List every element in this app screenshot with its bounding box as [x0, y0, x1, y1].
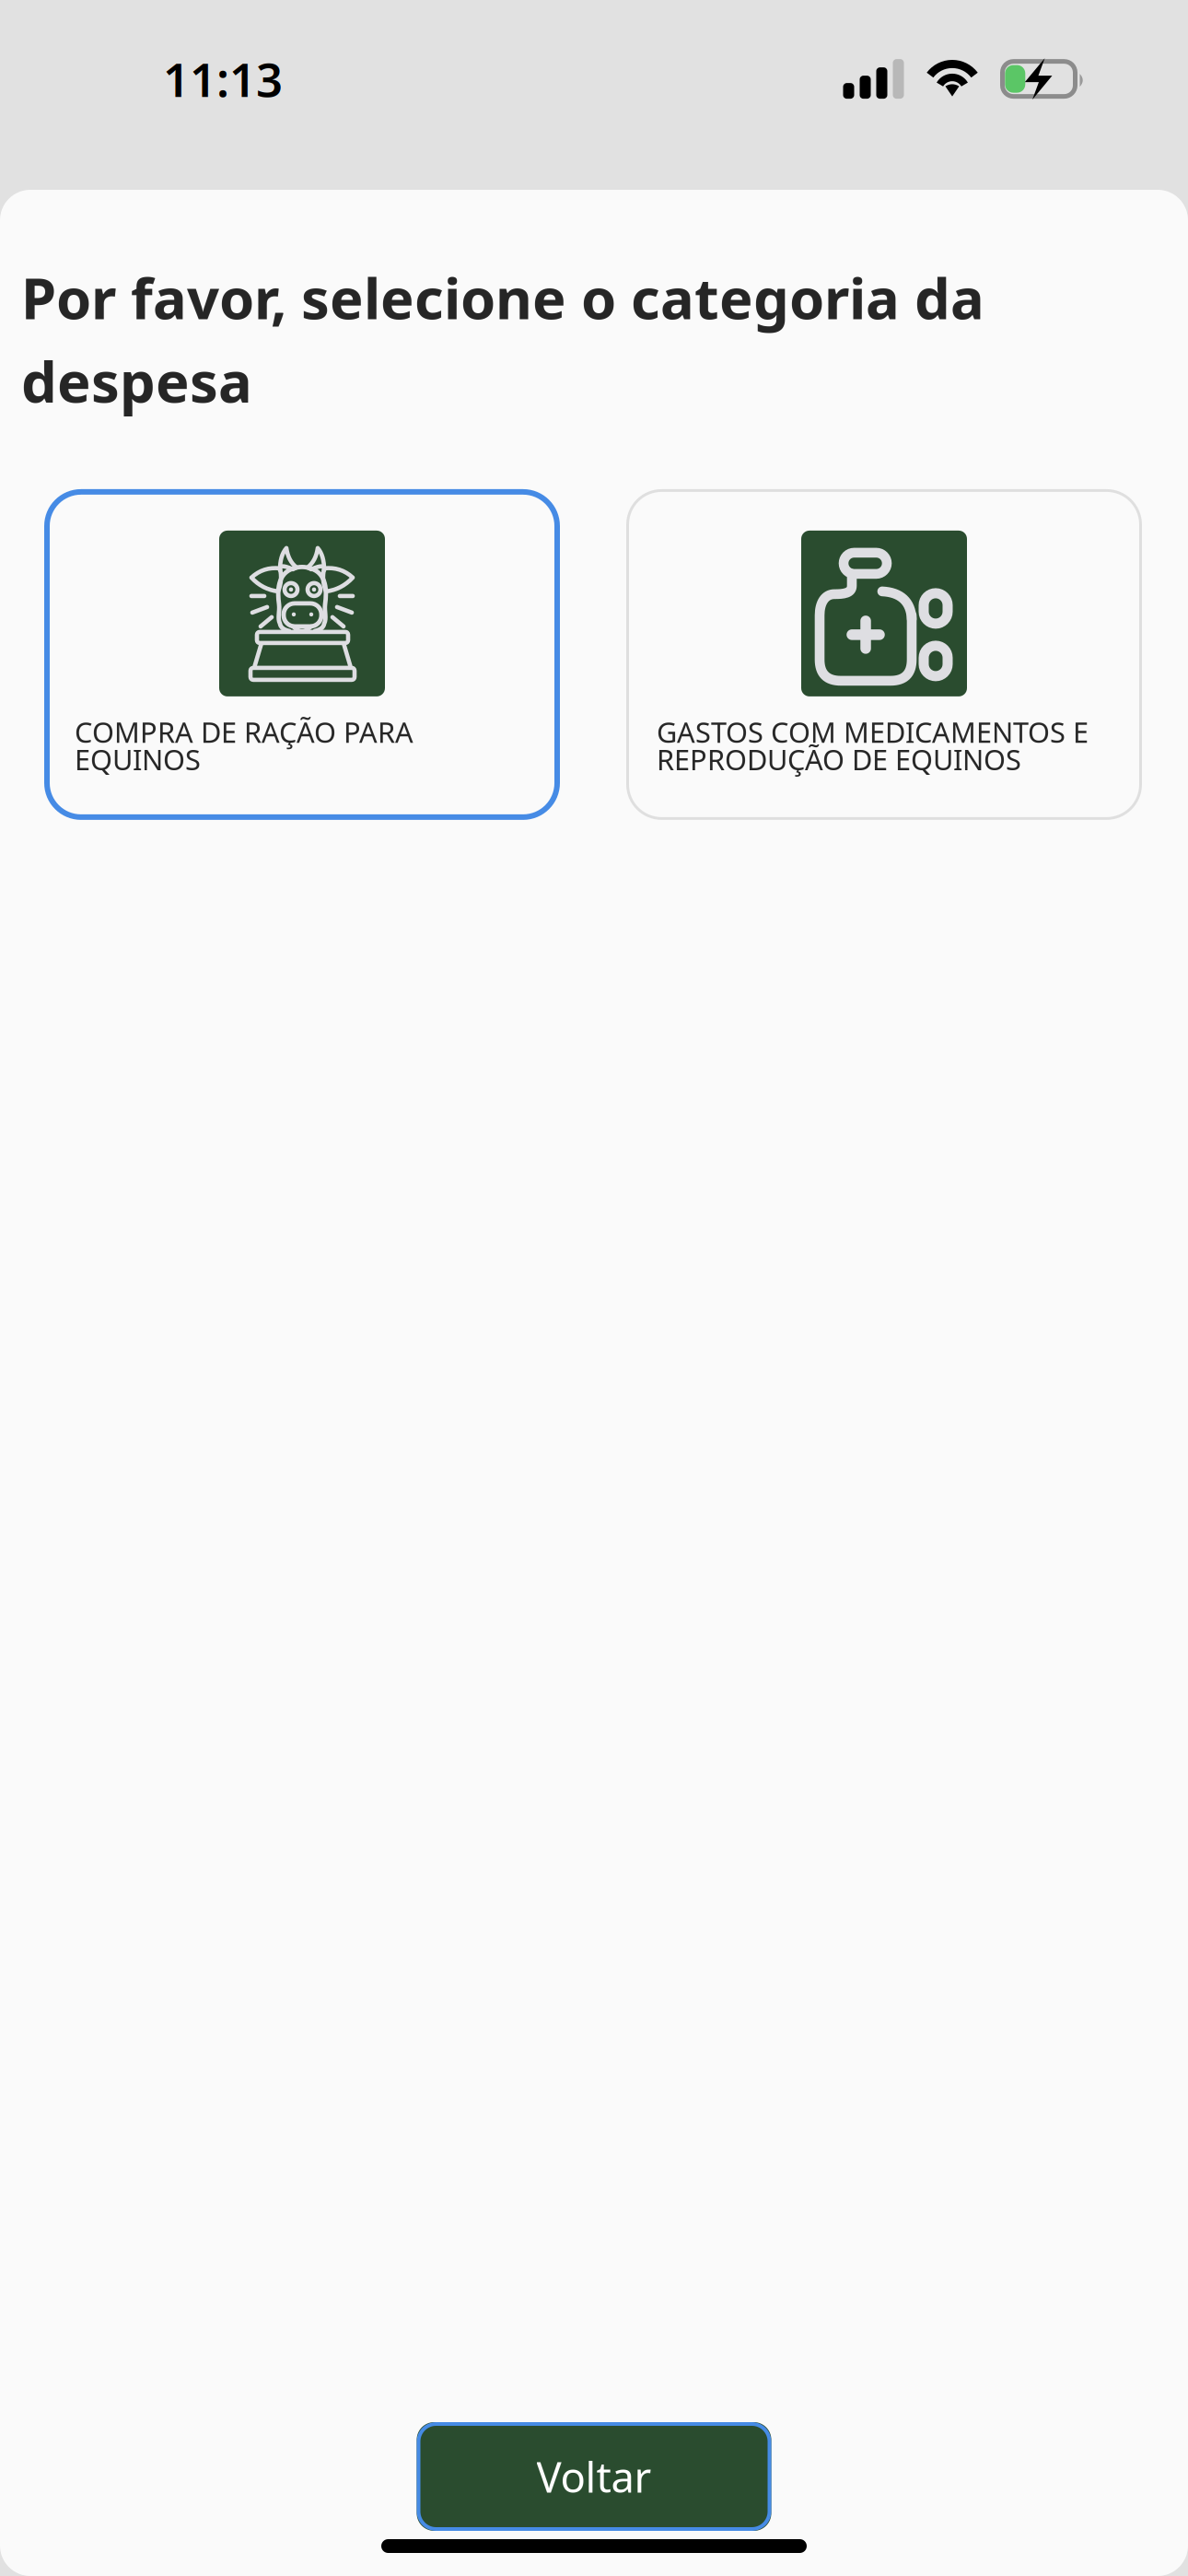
staticText: COMPRA DE RAÇÃO PARA: [75, 713, 413, 751]
staticText: GASTOS COM MEDICAMENTOS E: [657, 713, 1089, 751]
button[interactable]: Voltar: [417, 2422, 771, 2531]
staticText: Voltar: [536, 2449, 652, 2504]
button[interactable]: COMPRA DE RAÇÃO PARA EQUINOS: [44, 489, 560, 820]
staticText: REPRODUÇÃO DE EQUINOS: [657, 740, 1021, 778]
button[interactable]: GASTOS COM MEDICAMENTOS E REPRODUÇÃO DE …: [626, 489, 1142, 820]
staticText: EQUINOS: [75, 740, 201, 778]
staticText: Por favor, selecione o categoria da desp…: [21, 260, 984, 418]
staticText: 11:13: [163, 48, 283, 110]
